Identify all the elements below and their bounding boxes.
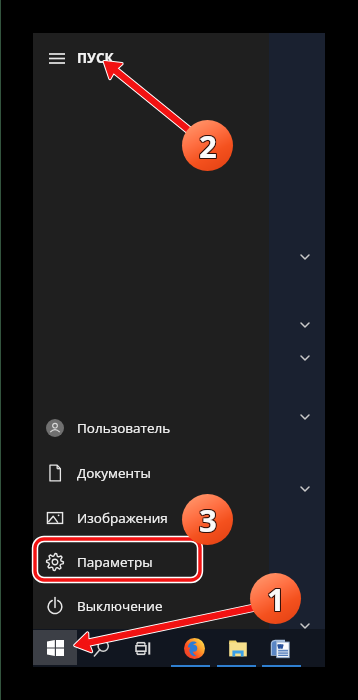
button[interactable]: Expand [296, 408, 314, 426]
staticText: Документы [77, 464, 151, 482]
staticText: 2 [199, 126, 217, 168]
staticText: ПУСК [77, 49, 114, 67]
staticText: Параметры [77, 553, 153, 571]
button[interactable]: Изображения [33, 496, 269, 540]
button[interactable]: Пользователь [33, 406, 269, 450]
staticText: 1 [268, 579, 286, 621]
staticText: 1 [267, 578, 285, 620]
staticText: 1 [266, 577, 284, 619]
staticText: 3 [199, 498, 217, 540]
staticText: 3 [199, 500, 217, 542]
button[interactable]: Expand [296, 480, 314, 498]
button[interactable]: Word [260, 629, 298, 667]
staticText: 2 [198, 125, 216, 167]
button[interactable]: Expand [296, 617, 314, 635]
button[interactable]: Menu [40, 43, 74, 73]
button[interactable]: Start [33, 630, 77, 665]
staticText: Изображения [77, 509, 168, 527]
staticText: 1 [268, 577, 286, 619]
staticText: 3 [200, 500, 218, 542]
staticText: 1 [267, 577, 285, 619]
staticText: 1 [266, 578, 284, 620]
staticText: 2 [200, 124, 218, 166]
staticText: 1 [268, 578, 286, 620]
staticText: 3 [198, 498, 216, 540]
staticText: 3 [198, 499, 216, 541]
staticText: Пользователь [77, 419, 171, 437]
button[interactable]: Expand [296, 316, 314, 334]
staticText: 2 [199, 124, 217, 166]
button[interactable]: Документы [33, 451, 269, 495]
button[interactable]: Expand [296, 248, 314, 266]
button[interactable]: Firefox [175, 629, 213, 667]
staticText: 2 [198, 124, 216, 166]
staticText: Выключение [77, 597, 163, 615]
staticText: 3 [198, 500, 216, 542]
staticText: 3 [200, 499, 218, 541]
staticText: 2 [200, 125, 218, 167]
button[interactable]: Параметры [33, 540, 269, 584]
button[interactable]: Search [82, 629, 120, 667]
button[interactable]: Выключение [33, 584, 269, 628]
staticText: 1 [267, 579, 285, 621]
button[interactable]: Expand [296, 349, 314, 367]
staticText: 3 [200, 498, 218, 540]
button[interactable]: Task view [124, 629, 162, 667]
staticText: 3 [199, 499, 217, 541]
button[interactable]: File Explorer [219, 629, 257, 667]
staticText: 2 [200, 126, 218, 168]
staticText: 1 [266, 579, 284, 621]
staticText: 2 [198, 126, 216, 168]
staticText: 2 [199, 125, 217, 167]
